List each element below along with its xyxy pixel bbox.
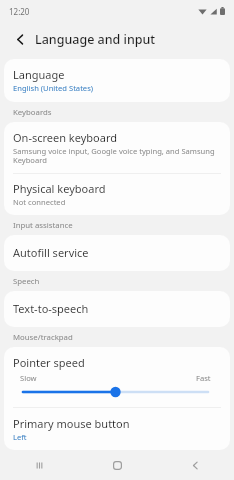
- staticText: Physical keyboard: [13, 181, 106, 196]
- button[interactable]: Recent apps: [0, 450, 78, 480]
- button[interactable]: Autofill service: [4, 235, 230, 271]
- staticText: Language: [13, 67, 65, 82]
- button[interactable]: Pointer speed: [4, 347, 230, 407]
- staticText: On-screen keyboard: [13, 130, 118, 145]
- staticText: Speech: [13, 276, 40, 287]
- button[interactable]: Back: [156, 450, 234, 480]
- staticText: Autofill service: [13, 245, 89, 260]
- staticText: Fast: [196, 373, 211, 383]
- staticText: Slow: [20, 373, 37, 383]
- staticText: Language and input: [35, 31, 156, 48]
- button[interactable]: On-screen keyboard: [4, 122, 230, 173]
- staticText: Primary mouse button: [13, 416, 130, 431]
- staticText: 12:20: [9, 6, 30, 17]
- button[interactable]: Primary mouse button: [4, 408, 230, 450]
- staticText: Pointer speed: [13, 355, 85, 370]
- button[interactable]: Language: [4, 59, 230, 102]
- button[interactable]: Physical keyboard: [4, 174, 230, 215]
- button[interactable]: Home: [78, 450, 156, 480]
- staticText: Samsung voice input, Google voice typing…: [13, 146, 218, 166]
- staticText: English (United States): [13, 83, 94, 93]
- staticText: Keyboards: [13, 107, 52, 118]
- staticText: Not connected: [13, 197, 66, 207]
- staticText: Left: [13, 432, 27, 441]
- staticText: Mouse/trackpad: [13, 332, 73, 343]
- staticText: Text-to-speech: [13, 301, 89, 316]
- button[interactable]: Navigate up: [10, 29, 30, 49]
- staticText: Input assistance: [13, 220, 73, 231]
- button[interactable]: Text-to-speech: [4, 291, 230, 327]
